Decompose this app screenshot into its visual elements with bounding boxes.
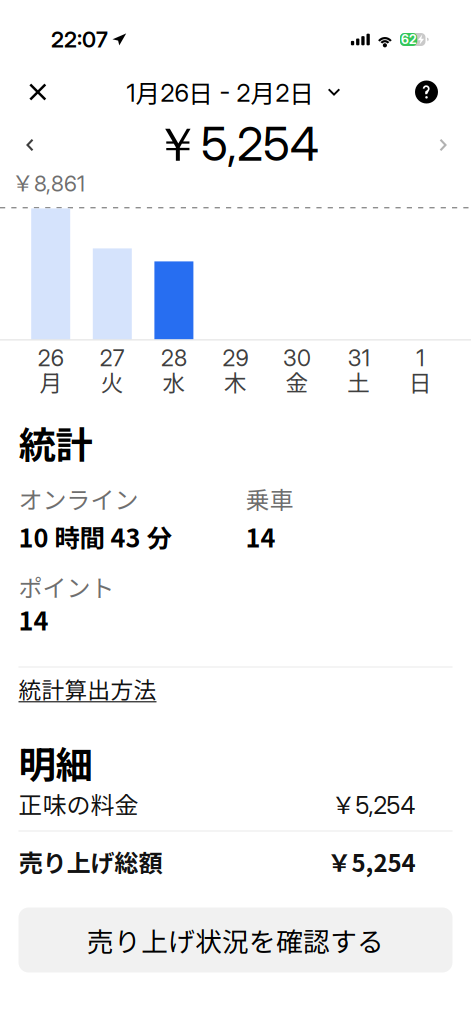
staticText: 28 [161,344,187,372]
staticText: 29 [222,344,248,372]
button[interactable]: 1月26日 - 2月2日 [127,70,340,114]
staticText: ポイント [18,569,114,604]
staticText: 日 [409,365,432,398]
staticText: オンライン [18,481,138,516]
staticText: 月 [39,365,62,398]
staticText: 1 [416,344,424,372]
staticText: ￥5,254 [154,115,319,175]
staticText: 62 [401,32,417,47]
staticText: 22:07 [51,26,108,53]
staticText: 14 [245,518,275,555]
staticText: 明細 [18,735,92,790]
staticText: 統計 [18,415,92,470]
staticText: 乗車 [245,481,293,516]
staticText: 1月26日 - 2月2日 [127,74,315,110]
staticText: 27 [100,344,125,372]
staticText: 水 [162,365,185,398]
staticText: 金 [286,365,309,398]
staticText: 土 [347,365,370,398]
staticText: 統計算出方法 [18,672,156,705]
staticText: ￥5,254 [327,844,415,879]
button[interactable]: Close [18,70,73,114]
button[interactable]: Next week [421,122,465,168]
staticText: ￥8,861 [12,166,85,198]
staticText: 火 [101,365,124,398]
staticText: 26 [38,344,64,372]
staticText: 31 [348,344,370,372]
button[interactable]: 統計算出方法 [18,667,452,709]
button[interactable]: Help [394,70,450,114]
staticText: 売り上げ状況を確認する [87,921,384,959]
button[interactable]: 売り上げ状況を確認する [18,907,452,972]
staticText: 10 時間 43 分 [18,518,171,555]
staticText: 木 [224,365,247,398]
staticText: 正味の料金 [18,786,138,821]
staticText: 14 [18,601,48,638]
staticText: ￥5,254 [331,786,415,821]
staticText: 30 [283,344,311,372]
button[interactable]: Previous week [8,122,52,168]
staticText: 売り上げ総額 [18,844,162,879]
